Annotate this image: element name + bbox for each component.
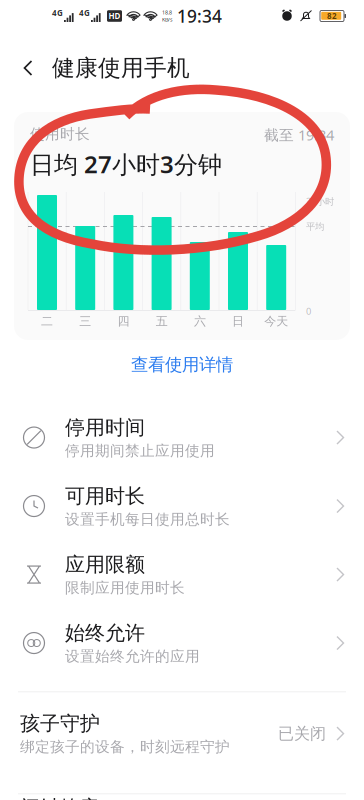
button[interactable]: 应用限额 (0, 540, 364, 609)
staticText: 36小时 (306, 195, 334, 207)
staticText: 平均 (306, 221, 324, 232)
staticText: 日 (232, 314, 244, 329)
staticText: 闹钟静音 (20, 795, 100, 800)
staticText: 截至 19:34 (264, 125, 334, 144)
staticText: 停用期间禁止应用使用 (65, 442, 215, 460)
button[interactable]: 始终允许 (0, 609, 364, 677)
staticText: 四 (117, 314, 129, 329)
staticText: 4G (52, 8, 63, 18)
staticText: 18.8 KB/s (162, 9, 173, 23)
staticText: 0 (306, 305, 311, 317)
staticText: 今天 (264, 314, 288, 329)
staticText: HD (108, 11, 120, 21)
staticText: 始终允许 (65, 621, 145, 645)
staticText: 设置始终允许的应用 (65, 647, 200, 665)
staticText: 19:34 (177, 4, 222, 27)
staticText: 82 (327, 11, 337, 21)
staticText: 4G (79, 8, 90, 18)
staticText: 可用时长 (65, 484, 145, 508)
button[interactable]: 孩子守护 (0, 692, 364, 793)
staticText: 应用限额 (65, 552, 145, 577)
staticText: 查看使用详情 (131, 354, 233, 375)
staticText: 二 (41, 314, 53, 329)
staticText: 三 (79, 314, 91, 329)
staticText: 日均 27小时3分钟 (30, 148, 222, 180)
button[interactable]: 停用时间 (0, 403, 364, 472)
staticText: 健康使用手机 (52, 54, 190, 82)
button[interactable]: 闹钟静音 (0, 794, 364, 800)
staticText: 已关闭 (278, 724, 326, 743)
button[interactable]: 可用时长 (0, 472, 364, 540)
staticText: 五 (156, 314, 168, 329)
staticText: 六 (194, 314, 206, 329)
staticText: 孩子守护 (20, 711, 100, 736)
staticText: 限制应用使用时长 (65, 579, 185, 597)
button[interactable]: 返回 (8, 46, 48, 90)
staticText: 使用时长 (30, 125, 90, 143)
staticText: 停用时间 (65, 415, 145, 440)
button[interactable]: 查看使用详情 (0, 340, 364, 389)
staticText: 设置手机每日使用总时长 (65, 510, 230, 528)
staticText: 绑定孩子的设备，时刻远程守护 (20, 738, 230, 756)
